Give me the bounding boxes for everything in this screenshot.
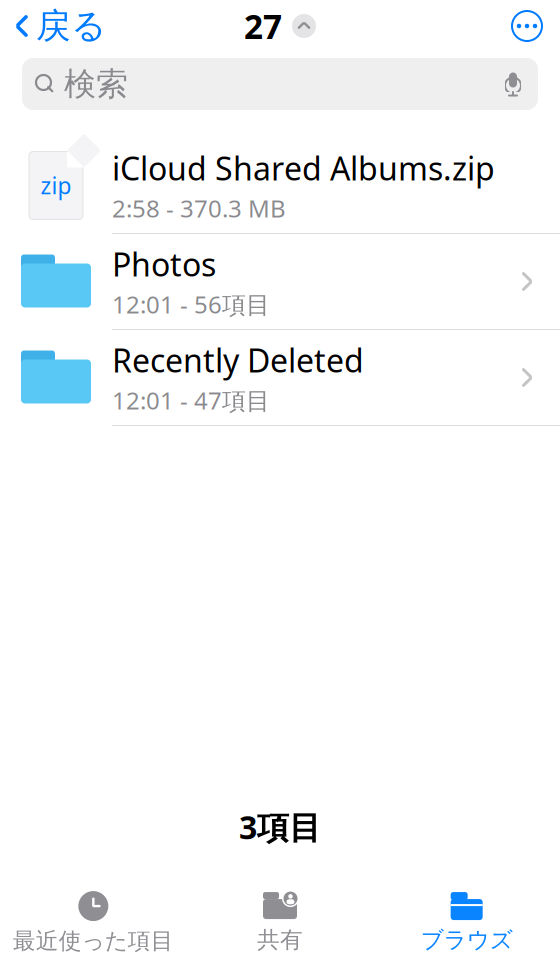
button[interactable]: 共有: [187, 888, 373, 958]
staticText: 27: [244, 4, 282, 48]
button[interactable]: Recently Deleted: [0, 330, 560, 425]
button[interactable]: 検索: [22, 58, 538, 110]
staticText: iCloud Shared Albums.zip: [112, 147, 495, 189]
staticText: 2:58 - 370.3 MB: [112, 192, 286, 224]
staticText: 戻る: [36, 5, 106, 47]
staticText: 3項目: [239, 805, 321, 848]
staticText: 検索: [64, 64, 128, 104]
staticText: ブラウズ: [421, 926, 513, 954]
staticText: 12:01 - 47項目: [112, 384, 270, 416]
button[interactable]: 戻る: [0, 0, 106, 53]
button[interactable]: Photos: [0, 234, 560, 329]
button[interactable]: zip: [0, 138, 560, 233]
staticText: Photos: [112, 243, 216, 285]
button[interactable]: ブラウズ: [373, 888, 560, 958]
button[interactable]: 最近使った項目: [0, 887, 187, 959]
button[interactable]: その他: [512, 5, 560, 47]
button[interactable]: 27 フォルダオプション: [244, 0, 316, 54]
staticText: zip: [40, 170, 71, 200]
staticText: 共有: [257, 926, 303, 954]
staticText: 12:01 - 56項目: [112, 288, 270, 320]
staticText: Recently Deleted: [112, 339, 364, 381]
staticText: 最近使った項目: [13, 927, 174, 955]
